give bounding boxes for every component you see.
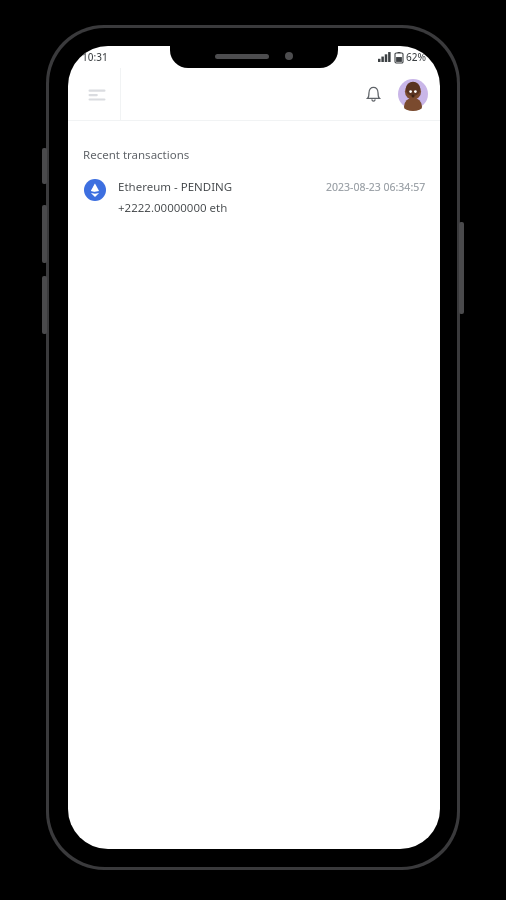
button[interactable]: Profile <box>396 77 430 111</box>
staticText: +2222.00000000 eth <box>118 200 228 216</box>
button[interactable]: Notifications <box>356 77 390 111</box>
staticText: 62% <box>406 50 426 64</box>
staticText: 2023-08-23 06:34:57 <box>326 180 426 194</box>
button[interactable]: Open navigation menu <box>80 77 114 111</box>
staticText: Ethereum - PENDING <box>118 179 233 195</box>
staticText: Recent transactions <box>83 147 190 163</box>
button[interactable]: Ethereum - PENDING <box>68 177 440 222</box>
staticText: 10:31 <box>82 50 108 64</box>
